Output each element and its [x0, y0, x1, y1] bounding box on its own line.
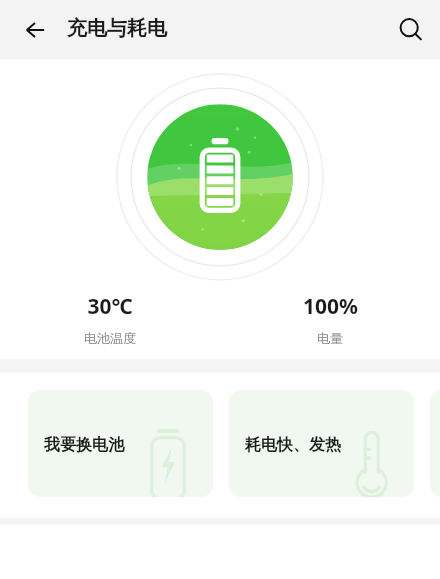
- button[interactable]: Search: [387, 6, 435, 54]
- staticText: 我要换电池: [44, 435, 124, 455]
- staticText: 100%: [303, 292, 358, 321]
- staticText: 耗电快、发热: [245, 435, 341, 455]
- staticText: 电量: [317, 330, 343, 346]
- staticText: 30℃: [87, 292, 133, 321]
- button[interactable]: 我要换电池: [28, 390, 213, 497]
- button[interactable]: 耗电快、发热: [229, 390, 414, 497]
- button[interactable]: [430, 390, 440, 497]
- button[interactable]: Back: [13, 8, 57, 52]
- staticText: 电池温度: [84, 330, 136, 346]
- staticText: 充电与耗电: [67, 16, 167, 41]
